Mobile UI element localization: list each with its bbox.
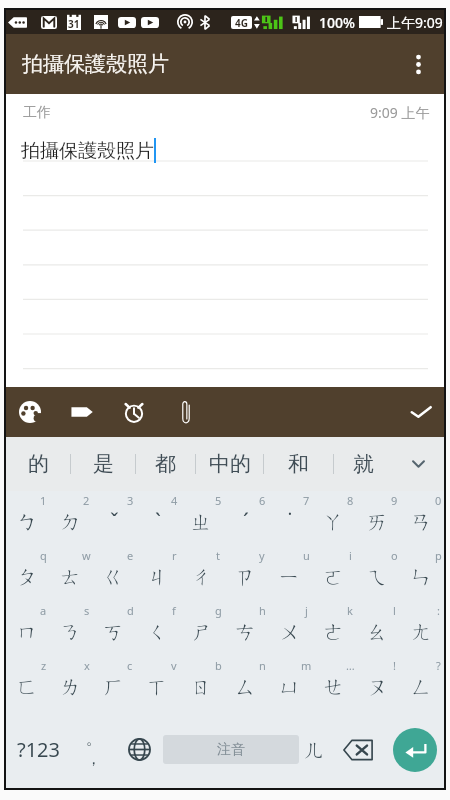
staticText: 9:09 上午 [370,103,430,122]
staticText: v [171,658,177,673]
staticText: l [393,603,396,618]
staticText: 3 [127,493,134,508]
staticText: ㄖ [191,674,213,700]
staticText: 上午9:09 [387,13,443,32]
staticText: ㄈ [17,674,39,700]
staticText: ㄩ [279,674,301,700]
button[interactable]: b [180,656,224,711]
staticText: ㄛ [323,564,345,590]
button[interactable]: n [224,656,268,711]
staticText: ㄟ [367,564,389,590]
button[interactable]: 6 [224,491,268,546]
button[interactable]: z [6,656,49,711]
staticText: r [172,548,177,563]
button[interactable]: a [6,601,49,656]
button[interactable]: 就 [334,437,393,491]
staticText: ! [393,658,396,673]
staticText: 和 [288,451,309,477]
button[interactable]: o [356,546,400,601]
button[interactable]: Enter [385,711,444,788]
staticText: 31 [68,17,80,31]
button[interactable]: 是 [71,437,135,491]
staticText: ㄕ [191,619,213,645]
button[interactable]: j [268,601,312,656]
button[interactable]: 1 [6,491,49,546]
staticText: s [84,603,90,618]
button[interactable]: d [92,601,136,656]
button[interactable]: Label [63,393,101,431]
button[interactable]: ?123 [6,711,70,788]
button[interactable]: Backspace [330,711,385,788]
button[interactable]: ! [356,656,400,711]
button[interactable]: q [6,546,49,601]
button[interactable]: i [312,546,356,601]
button[interactable]: … [312,656,356,711]
staticText: ? [436,658,441,673]
button[interactable]: p [400,546,444,601]
button[interactable]: w [49,546,92,601]
staticText: ㄇ [17,619,39,645]
button[interactable]: g [180,601,224,656]
button[interactable]: 和 [264,437,333,491]
staticText: 工作 [23,104,51,122]
button[interactable]: c [92,656,136,711]
staticText: a [40,603,47,618]
staticText: 中的 [209,451,251,477]
staticText: f [172,603,176,618]
staticText: 1 [40,493,47,508]
staticText: … [346,658,355,673]
button[interactable]: 4 [136,491,180,546]
button[interactable]: : [400,601,444,656]
button[interactable]: 8 [312,491,356,546]
button[interactable]: ㄦ [299,711,330,788]
staticText: 5 [215,493,222,508]
staticText: p [435,548,442,563]
button[interactable]: Done [402,393,440,431]
button[interactable]: 5 [180,491,224,546]
button[interactable]: 9 [356,491,400,546]
button[interactable]: 的 [6,437,70,491]
staticText: ˙ [288,507,292,536]
staticText: ˊ [243,507,249,536]
button[interactable]: h [224,601,268,656]
staticText: h [259,603,266,618]
button[interactable]: 2 [49,491,92,546]
button[interactable]: Attach [167,393,205,431]
button[interactable]: 中的 [196,437,263,491]
button[interactable]: f [136,601,180,656]
button[interactable]: l [356,601,400,656]
button[interactable]: ? [400,656,444,711]
button[interactable]: Change language [116,711,163,788]
button[interactable]: 3 [92,491,136,546]
staticText: n [259,658,266,673]
button[interactable]: t [180,546,224,601]
button[interactable]: y [224,546,268,601]
staticText: ㄗ [235,564,257,590]
button[interactable]: v [136,656,180,711]
staticText: ， [86,750,101,769]
button[interactable]: 都 [136,437,195,491]
button[interactable]: 0 [400,491,444,546]
staticText: z [41,658,47,673]
button[interactable]: x [49,656,92,711]
staticText: 拍攝保護殼照片 [21,139,154,163]
button[interactable]: 。 [70,711,116,788]
button[interactable]: 注音 [163,735,299,764]
button[interactable]: m [268,656,312,711]
button[interactable]: Colour [11,393,49,431]
button[interactable]: Reminder [115,393,153,431]
staticText: ㄏ [103,674,125,700]
staticText: 是 [93,451,114,477]
button[interactable]: s [49,601,92,656]
button[interactable]: e [92,546,136,601]
staticText: ㄊ [60,564,82,590]
staticText: ?123 [17,736,60,763]
button[interactable]: 7 [268,491,312,546]
button[interactable]: More options [394,40,442,88]
button[interactable]: k [312,601,356,656]
staticText: 注音 [217,741,245,759]
button[interactable]: u [268,546,312,601]
button[interactable]: Expand candidates [393,437,444,491]
button[interactable]: r [136,546,180,601]
staticText: ㄞ [367,509,389,535]
